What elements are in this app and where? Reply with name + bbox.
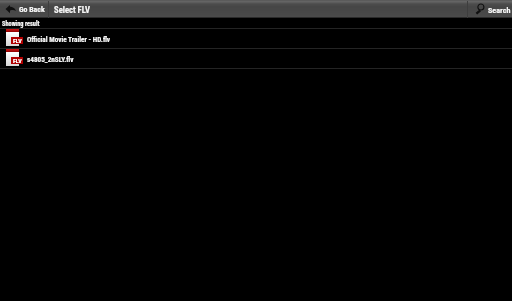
button[interactable]: Select FLV	[49, 1, 95, 18]
staticText: s4805_2nSLY.flv	[27, 55, 74, 63]
button[interactable]: FLV	[0, 49, 512, 69]
button[interactable]: Search	[468, 1, 512, 18]
staticText: Showing result	[2, 20, 40, 27]
staticText: Go Back	[19, 5, 45, 14]
other: Search	[474, 4, 485, 16]
staticText: Select FLV	[54, 5, 90, 15]
staticText: Official Movie Trailer - HD.flv	[27, 35, 111, 43]
staticText: FLV	[13, 37, 22, 44]
button[interactable]: Go Back	[0, 1, 48, 18]
staticText: FLV	[13, 57, 22, 64]
button[interactable]: FLV	[0, 29, 512, 49]
staticText: Search	[488, 5, 511, 14]
other: Go Back	[5, 5, 16, 14]
